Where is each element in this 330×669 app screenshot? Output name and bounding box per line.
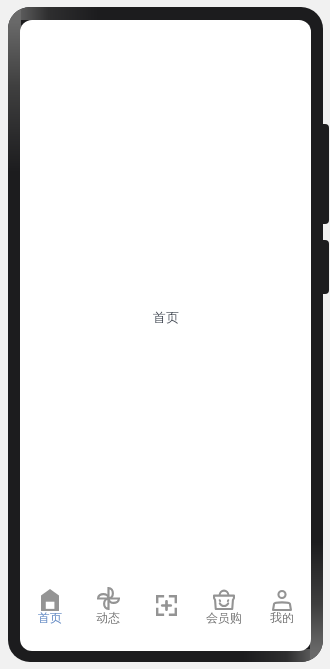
button[interactable]: 会员购 (195, 589, 253, 625)
staticText: 首页 (153, 309, 180, 326)
button[interactable]: 动态 (79, 589, 137, 625)
staticText: 动态 (96, 610, 120, 625)
staticText: 首页 (38, 610, 62, 625)
staticText: 会员购 (206, 610, 242, 625)
staticText: 我的 (270, 610, 294, 625)
button[interactable]: 首页 (20, 589, 79, 625)
button[interactable]: 我的 (253, 589, 311, 625)
button[interactable]: 扫一扫 Scan (137, 589, 195, 625)
